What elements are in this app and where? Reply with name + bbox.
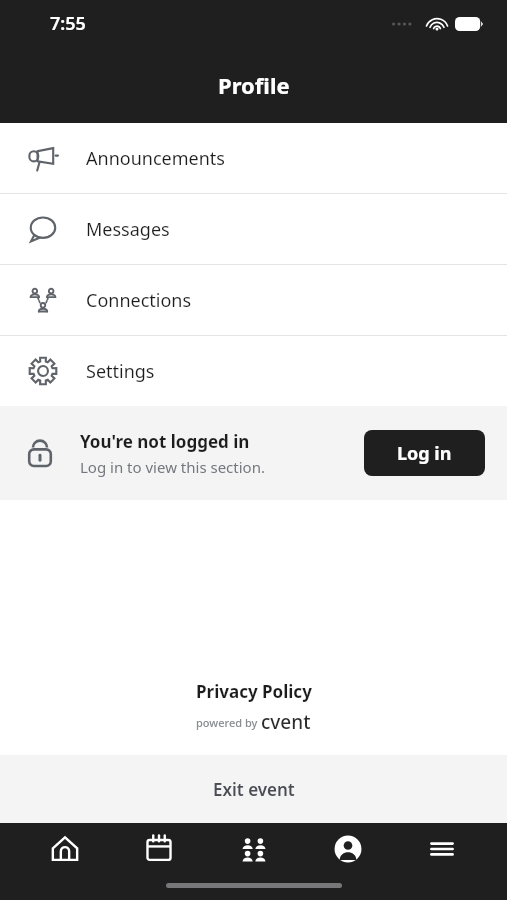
staticText: 7:55 bbox=[50, 11, 86, 36]
button[interactable]: Attendees bbox=[225, 823, 283, 875]
button[interactable]: Exit event bbox=[0, 755, 507, 823]
staticText: Settings bbox=[86, 359, 155, 384]
button[interactable]: Privacy Policy bbox=[196, 680, 312, 703]
staticText: Messages bbox=[86, 217, 170, 242]
staticText: powered by bbox=[196, 715, 261, 730]
staticText: cvent bbox=[261, 709, 311, 735]
staticText: Profile bbox=[218, 70, 290, 100]
button[interactable]: Profile bbox=[319, 823, 377, 875]
button[interactable]: Messages bbox=[0, 194, 507, 264]
staticText: Exit event bbox=[213, 778, 295, 801]
button[interactable]: Schedule bbox=[130, 823, 188, 875]
button[interactable]: Home bbox=[36, 823, 94, 875]
staticText: Log in bbox=[397, 441, 452, 466]
button[interactable]: Settings bbox=[0, 336, 507, 406]
staticText: Connections bbox=[86, 288, 192, 313]
other: Locked bbox=[22, 435, 58, 471]
button[interactable]: Announcements bbox=[0, 123, 507, 193]
staticText: You're not logged in bbox=[80, 430, 250, 453]
button[interactable]: Log in bbox=[364, 430, 485, 476]
staticText: Log in to view this section. bbox=[80, 457, 265, 477]
button[interactable]: Connections bbox=[0, 265, 507, 335]
button[interactable]: More bbox=[413, 823, 471, 875]
staticText: Announcements bbox=[86, 146, 225, 171]
button[interactable]: Locked bbox=[0, 406, 507, 500]
